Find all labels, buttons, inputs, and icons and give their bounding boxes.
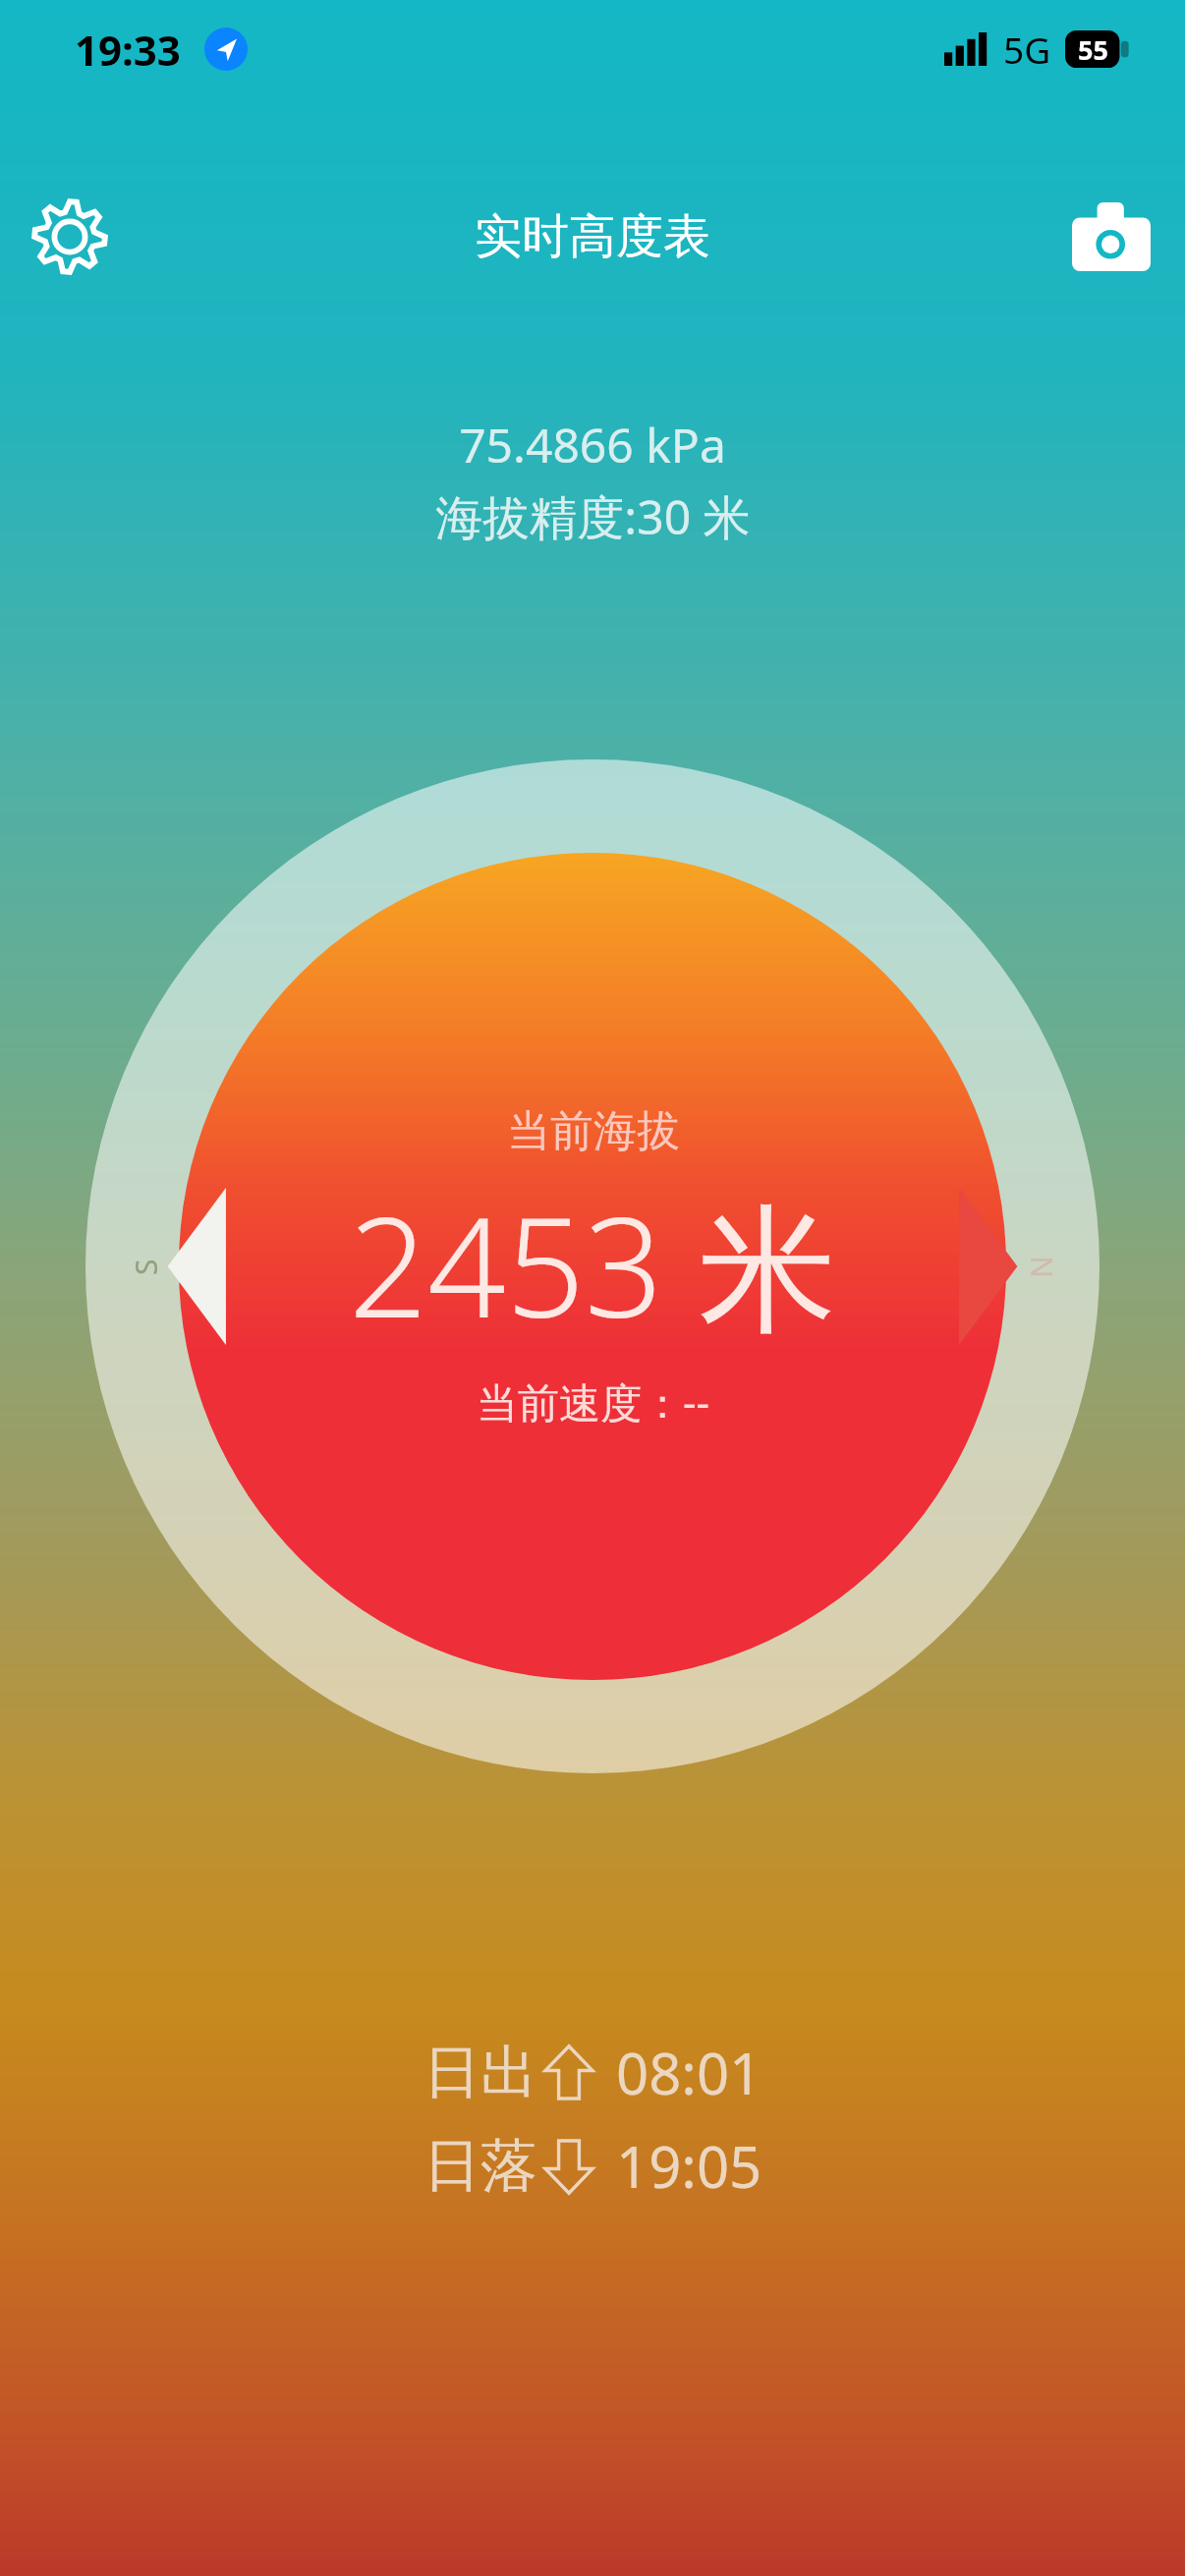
- staticText: 19:33: [75, 22, 181, 78]
- staticText: 75.4866 kPa: [459, 413, 726, 476]
- staticText: 19:05: [616, 2127, 762, 2205]
- staticText: 海拔精度:30 米: [435, 484, 751, 549]
- staticText: 日落: [423, 2130, 537, 2202]
- staticText: 08:01: [616, 2034, 762, 2111]
- staticText: N: [1021, 1256, 1061, 1278]
- staticText: 2453 米: [349, 1170, 837, 1358]
- staticText: 5G: [1003, 25, 1051, 74]
- staticText: 当前海拔: [507, 1104, 680, 1158]
- staticText: 55: [1078, 31, 1108, 68]
- staticText: 实时高度表: [475, 207, 710, 266]
- button[interactable]: Camera: [1061, 187, 1161, 287]
- staticText: S: [126, 1259, 166, 1275]
- button[interactable]: Settings: [20, 187, 120, 287]
- staticText: 当前速度：--: [477, 1373, 710, 1429]
- staticText: 日出: [423, 2037, 537, 2108]
